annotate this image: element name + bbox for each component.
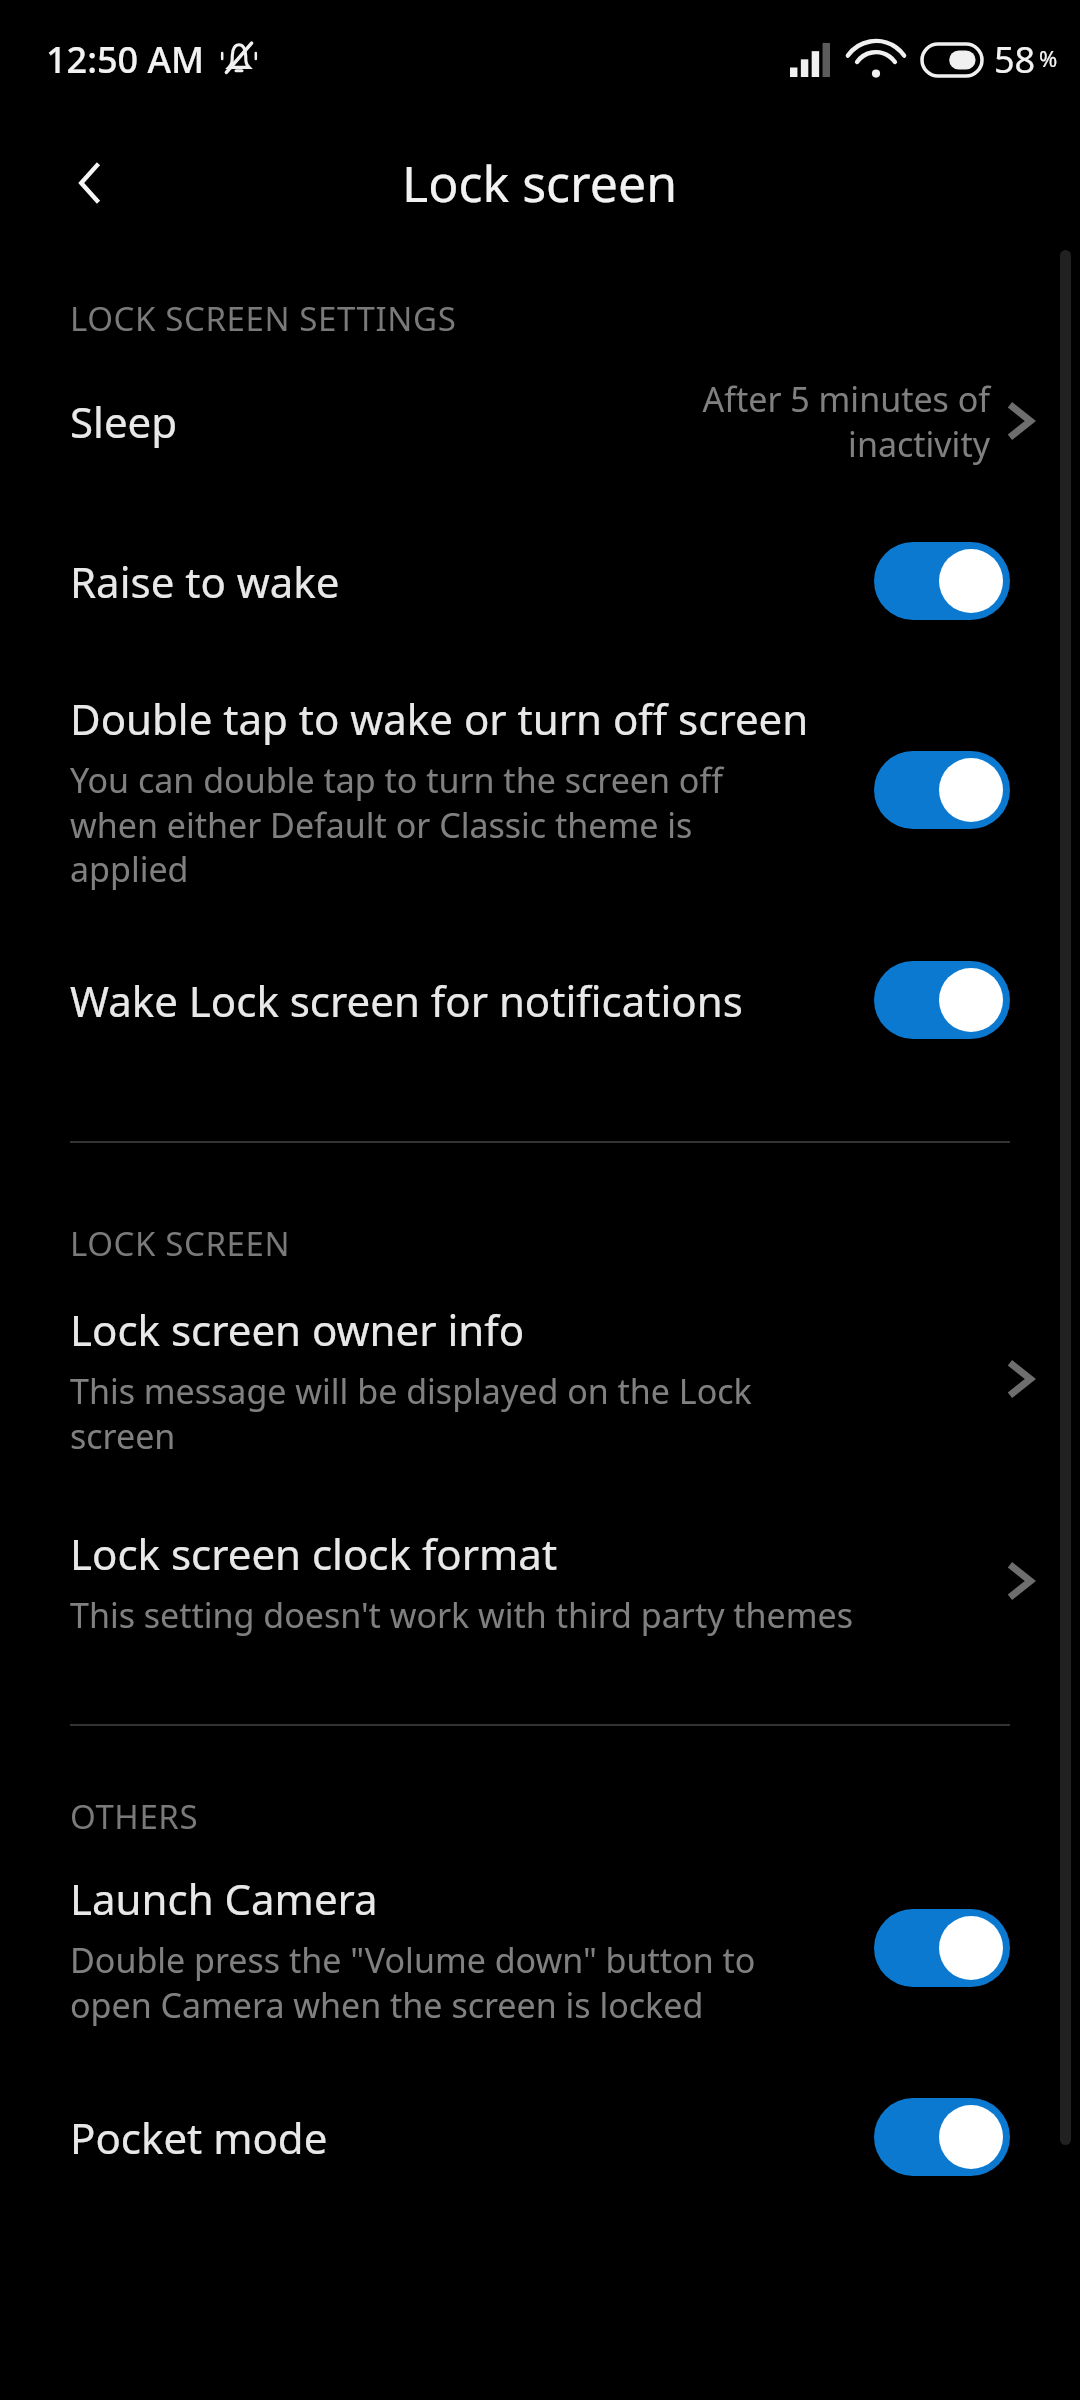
staticText: This message will be displayed on the Lo… <box>70 1368 860 1458</box>
staticText: OTHERS <box>70 1794 199 1839</box>
button[interactable]: Pocket mode <box>0 2057 1080 2217</box>
button[interactable]: Lock screen clock format <box>0 1492 1080 1670</box>
staticText: Raise to wake <box>70 553 858 610</box>
staticText: Double tap to wake or turn off screen <box>70 690 858 747</box>
button[interactable]: Double tap to wake or turn off screen <box>0 661 1080 919</box>
staticText: Launch Camera <box>70 1870 858 1927</box>
button[interactable]: Raise to wake <box>0 501 1080 661</box>
staticText: Pocket mode <box>70 2109 858 2166</box>
staticText: After 5 minutes of inactivity <box>690 376 990 466</box>
staticText: Sleep <box>70 393 690 450</box>
button[interactable]: Back <box>36 129 144 237</box>
staticText: Double press the "Volume down" button to… <box>70 1937 770 2027</box>
staticText: Lock screen clock format <box>70 1525 558 1582</box>
staticText: This setting doesn't work with third par… <box>70 1592 930 1638</box>
staticText: 12:50 AM <box>46 35 205 84</box>
button[interactable]: Lock screen owner info <box>0 1266 1080 1492</box>
staticText: Lock screen <box>402 149 678 217</box>
staticText: LOCK SCREEN <box>70 1221 291 1266</box>
staticText: Lock screen owner info <box>70 1301 525 1358</box>
button[interactable]: Launch Camera <box>0 1839 1080 2057</box>
button[interactable]: Wake Lock screen for notifications <box>0 919 1080 1081</box>
staticText: % <box>1039 43 1058 73</box>
staticText: LOCK SCREEN SETTINGS <box>70 296 457 341</box>
staticText: Wake Lock screen for notifications <box>70 972 858 1029</box>
staticText: You can double tap to turn the screen of… <box>70 757 770 891</box>
staticText: 58 <box>994 35 1036 84</box>
button[interactable]: Sleep <box>0 341 1080 501</box>
